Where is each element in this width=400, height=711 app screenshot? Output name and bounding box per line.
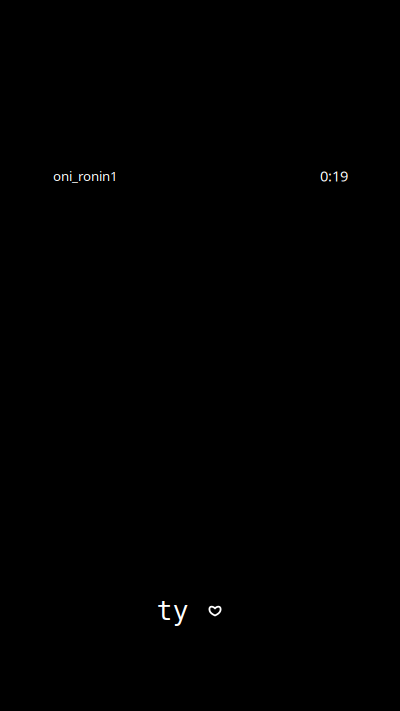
button[interactable]: Like — [208, 605, 221, 616]
staticText: ty — [156, 596, 188, 626]
staticText: oni_ronin1 — [53, 167, 118, 185]
button[interactable]: oni_ronin1 — [53, 167, 118, 185]
staticText: 0:19 — [320, 166, 348, 185]
button[interactable]: ty — [156, 596, 188, 626]
